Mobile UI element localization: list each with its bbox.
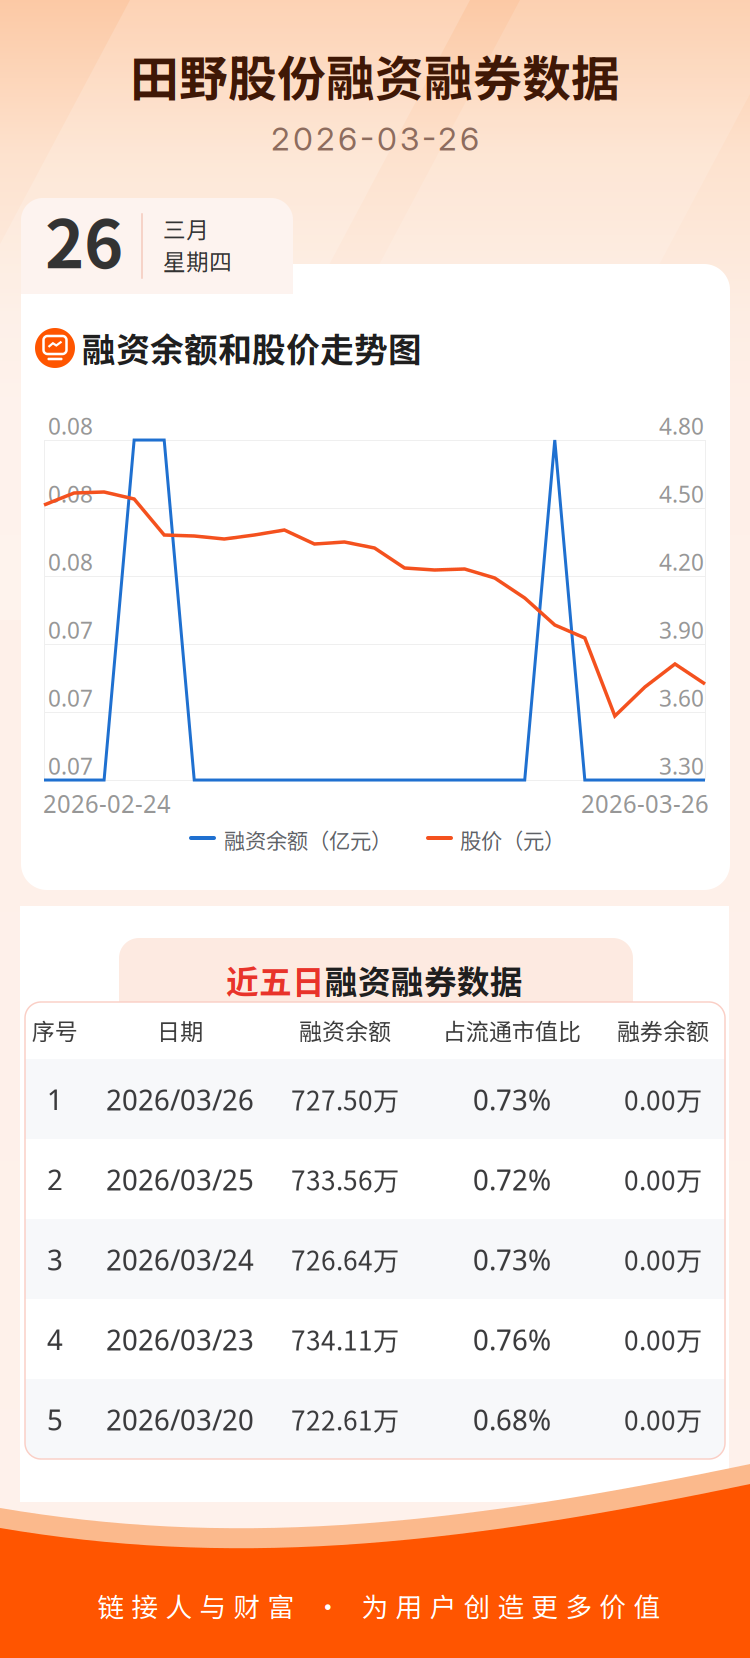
- staticText: 2026/03/26: [106, 1079, 254, 1119]
- staticText: 融资余额（亿元）: [224, 824, 392, 855]
- staticText: 0.73%: [473, 1239, 551, 1279]
- staticText: 0.08: [48, 409, 93, 442]
- staticText: 2026/03/25: [106, 1159, 254, 1199]
- staticText: 722.61万: [291, 1400, 399, 1438]
- staticText: 链接人与财富 · 为用户创造更多价值: [97, 1586, 660, 1625]
- staticText: 0.07: [48, 749, 93, 782]
- staticText: 2: [47, 1159, 63, 1199]
- staticText: 日期: [157, 1013, 203, 1047]
- staticText: 0.08: [48, 477, 93, 510]
- staticText: 融资融券数据: [325, 956, 523, 1003]
- staticText: 0.00万: [624, 1080, 702, 1118]
- staticText: 0.07: [48, 613, 93, 646]
- staticText: 5: [47, 1399, 63, 1439]
- staticText: 0.00万: [624, 1320, 702, 1358]
- staticText: 3.90: [659, 613, 704, 646]
- staticText: 0.76%: [473, 1319, 551, 1359]
- staticText: 2026-03-26: [271, 119, 479, 158]
- staticText: 0.00万: [624, 1160, 702, 1198]
- staticText: 融资余额和股价走势图: [82, 323, 422, 372]
- staticText: 0.68%: [473, 1399, 551, 1439]
- staticText: 近五日: [226, 956, 325, 1003]
- staticText: 2026-03-26: [581, 786, 709, 820]
- staticText: 3: [47, 1239, 63, 1279]
- staticText: 26: [45, 191, 123, 287]
- staticText: 726.64万: [291, 1240, 399, 1278]
- staticText: 0.07: [48, 681, 93, 714]
- staticText: 4: [47, 1319, 63, 1359]
- staticText: 1: [47, 1079, 63, 1119]
- staticText: 0.00万: [624, 1240, 702, 1278]
- staticText: 0.72%: [473, 1159, 551, 1199]
- staticText: 星期四: [163, 244, 232, 277]
- staticText: 2026/03/20: [106, 1399, 254, 1439]
- staticText: 4.50: [659, 477, 704, 510]
- staticText: 融券余额: [617, 1013, 709, 1047]
- staticText: 0.73%: [473, 1079, 551, 1119]
- staticText: 占流通市值比: [443, 1013, 581, 1047]
- staticText: 3.60: [659, 681, 704, 714]
- staticText: 三月: [163, 212, 209, 245]
- staticText: 0.08: [48, 545, 93, 578]
- staticText: 田野股份融资融券数据: [130, 40, 620, 110]
- staticText: 序号: [32, 1013, 78, 1047]
- staticText: 融资余额: [299, 1013, 391, 1047]
- staticText: 2026/03/23: [106, 1319, 254, 1359]
- staticText: 2026/03/24: [106, 1239, 254, 1279]
- staticText: 4.80: [659, 409, 704, 442]
- staticText: 2026-02-24: [43, 786, 171, 820]
- staticText: 734.11万: [291, 1320, 399, 1358]
- staticText: 733.56万: [291, 1160, 399, 1198]
- staticText: 股价（元）: [460, 824, 565, 855]
- staticText: 3.30: [659, 749, 704, 782]
- staticText: 0.00万: [624, 1400, 702, 1438]
- staticText: 4.20: [659, 545, 704, 578]
- staticText: 727.50万: [291, 1080, 399, 1118]
